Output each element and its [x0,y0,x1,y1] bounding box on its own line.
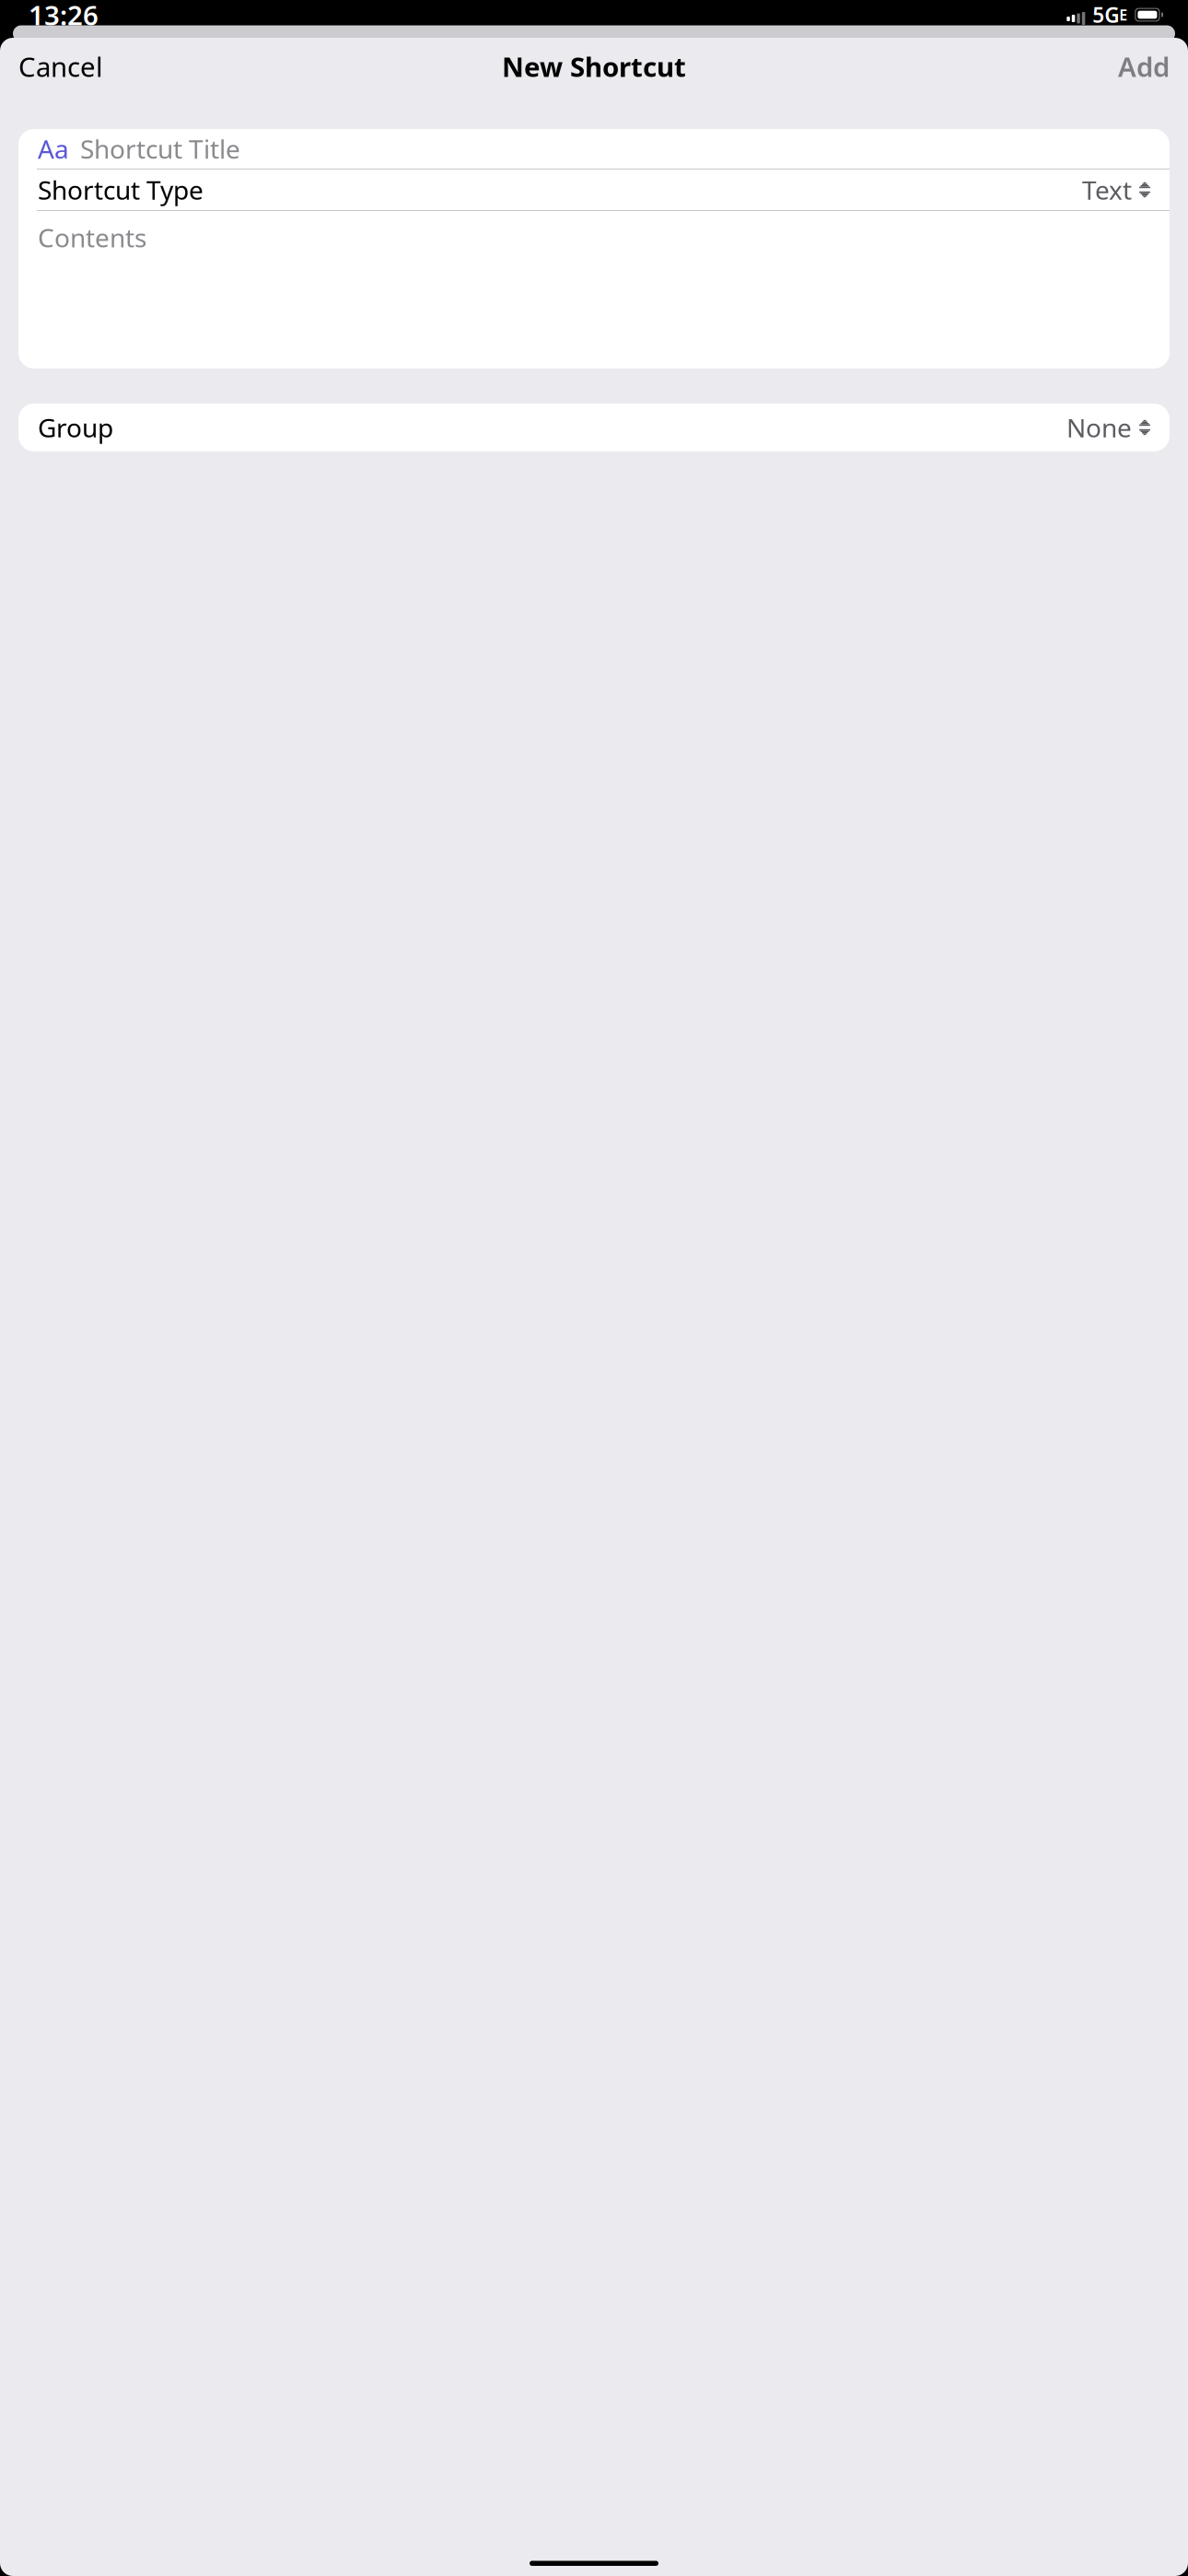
button[interactable]: Add [1112,39,1175,94]
staticText: Aa [38,132,69,166]
staticText: New Shortcut [502,48,686,84]
staticText: Group [38,410,113,445]
button[interactable]: Shortcut Type [18,170,1170,210]
staticText: Text [1082,173,1132,207]
staticText: 13:26 [29,0,99,33]
staticText: None [1066,410,1132,445]
staticText: Shortcut Title [80,132,240,166]
button[interactable]: Group [18,404,1170,451]
staticText: Shortcut Type [38,173,204,207]
staticText: Contents [38,220,146,254]
staticText: Add [1118,48,1170,84]
button[interactable]: Cancel [13,39,109,94]
button[interactable]: Contents [18,211,1170,369]
button[interactable]: Aa [18,129,1170,169]
staticText: Cancel [18,48,103,84]
staticText: E [1119,5,1127,25]
staticText: 5G [1092,1,1119,29]
